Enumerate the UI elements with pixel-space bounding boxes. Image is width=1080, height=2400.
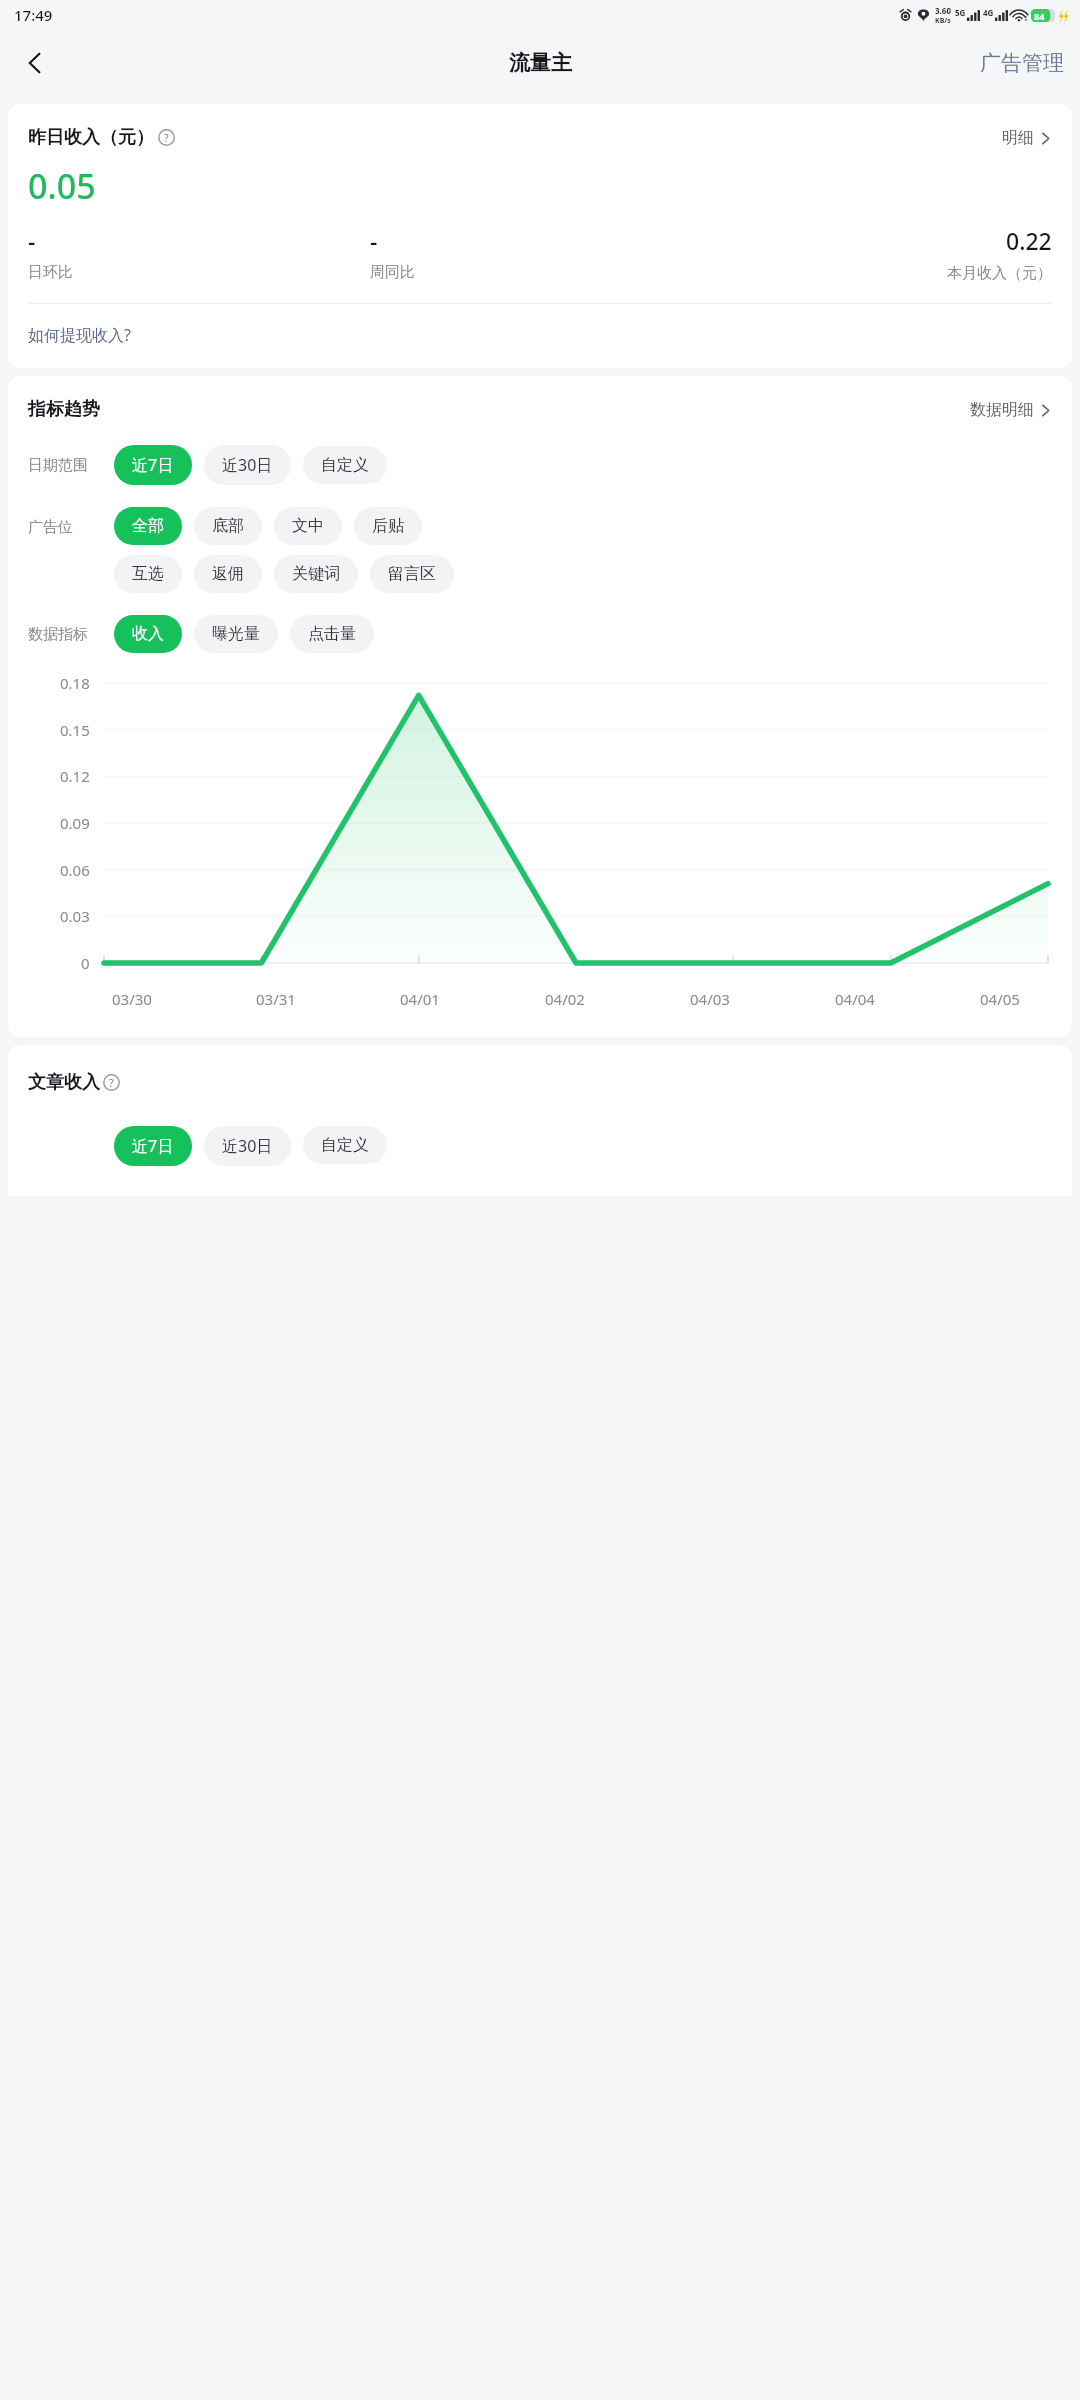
staticText: 互选 — [132, 564, 164, 584]
staticText: 曝光量 — [212, 624, 260, 644]
staticText: 5G — [955, 7, 966, 18]
button[interactable]: Back — [8, 36, 62, 90]
staticText: 03/31 — [256, 989, 296, 1009]
button[interactable]: 点击量 — [290, 615, 374, 653]
staticText: 底部 — [212, 516, 244, 536]
staticText: 近30日 — [222, 454, 273, 476]
staticText: 3.60 — [935, 5, 951, 16]
staticText: 广告位 — [28, 518, 73, 537]
staticText: 本月收入（元） — [947, 264, 1052, 283]
staticText: 04/02 — [545, 989, 585, 1009]
staticText: 如何提现收入? — [28, 324, 131, 346]
staticText: 收入 — [132, 624, 164, 644]
staticText: 后贴 — [372, 516, 404, 536]
staticText: 17:49 — [14, 5, 53, 25]
staticText: 04/01 — [400, 989, 440, 1009]
staticText: 文中 — [292, 516, 324, 536]
staticText: 点击量 — [308, 624, 356, 644]
button[interactable]: 留言区 — [370, 555, 454, 593]
staticText: 84 — [1034, 10, 1045, 22]
staticText: 0.09 — [60, 813, 90, 833]
staticText: 0 — [81, 953, 90, 973]
button[interactable]: 收入 — [114, 615, 182, 653]
staticText: 0.03 — [60, 906, 90, 926]
button[interactable]: 底部 — [194, 507, 262, 545]
button[interactable]: 文中 — [274, 507, 342, 545]
button[interactable]: 全部 — [114, 507, 182, 545]
button[interactable]: 近7日 — [114, 1126, 192, 1166]
staticText: 返佣 — [212, 564, 244, 584]
button[interactable]: 如何提现收入? — [28, 324, 131, 346]
staticText: - — [370, 225, 378, 255]
staticText: 0.12 — [60, 766, 90, 786]
staticText: 广告管理 — [980, 50, 1064, 76]
staticText: 日期范围 — [28, 456, 88, 475]
staticText: 日环比 — [28, 263, 73, 282]
staticText: 留言区 — [388, 564, 436, 584]
button[interactable]: 明细 — [1002, 128, 1052, 148]
staticText: ? — [109, 1076, 114, 1090]
staticText: 昨日收入（元） — [28, 126, 154, 149]
staticText: - — [28, 225, 36, 255]
button[interactable]: 返佣 — [194, 555, 262, 593]
staticText: 04/03 — [690, 989, 730, 1009]
staticText: 明细 — [1002, 128, 1034, 148]
button[interactable]: 数据明细 — [970, 400, 1052, 420]
button[interactable]: 近7日 — [114, 445, 192, 485]
staticText: 近7日 — [132, 454, 174, 476]
button[interactable]: 自定义 — [303, 446, 387, 484]
staticText: 数据指标 — [28, 625, 88, 644]
staticText: 04/04 — [835, 989, 875, 1009]
staticText: 流量主 — [509, 50, 572, 76]
staticText: 周同比 — [370, 263, 415, 282]
button[interactable]: 曝光量 — [194, 615, 278, 653]
staticText: 0.15 — [60, 720, 90, 740]
staticText: 指标趋势 — [28, 398, 100, 421]
button[interactable]: 关键词 — [274, 555, 358, 593]
staticText: 数据明细 — [970, 400, 1034, 420]
staticText: 自定义 — [321, 1135, 369, 1155]
button[interactable]: 近30日 — [204, 445, 291, 485]
button[interactable]: 广告管理 — [964, 40, 1080, 86]
button[interactable]: 近30日 — [204, 1126, 291, 1166]
staticText: KB/s — [935, 16, 951, 26]
staticText: 0.22 — [1006, 225, 1052, 256]
button[interactable]: 互选 — [114, 555, 182, 593]
staticText: 04/05 — [980, 989, 1020, 1009]
staticText: 自定义 — [321, 455, 369, 475]
staticText: ? — [164, 131, 169, 145]
staticText: 03/30 — [112, 989, 152, 1009]
staticText: 0.05 — [28, 163, 96, 209]
staticText: 关键词 — [292, 564, 340, 584]
staticText: 0.18 — [60, 673, 90, 693]
button[interactable]: 后贴 — [354, 507, 422, 545]
staticText: 4G — [983, 7, 994, 18]
staticText: 文章收入 — [28, 1071, 100, 1094]
staticText: 全部 — [132, 516, 164, 536]
staticText: 近7日 — [132, 1135, 174, 1157]
staticText: 0.06 — [60, 860, 90, 880]
staticText: 近30日 — [222, 1135, 273, 1157]
button[interactable]: 自定义 — [303, 1126, 387, 1164]
